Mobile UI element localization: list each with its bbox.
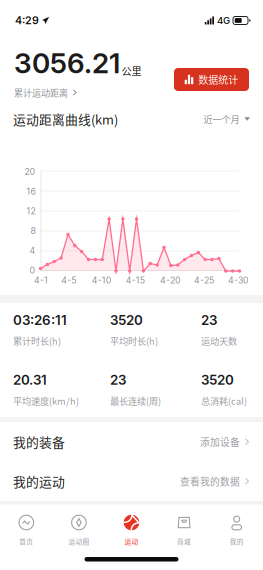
button[interactable]: 我的 <box>210 504 263 548</box>
staticText: 4G <box>217 15 230 26</box>
button[interactable]: 运动圈 <box>53 504 105 548</box>
staticText: 4 <box>29 245 35 256</box>
staticText: 近一个月 <box>203 112 239 126</box>
staticText: 4-15 <box>126 275 145 286</box>
staticText: 总消耗(cal) <box>201 394 247 407</box>
staticText: 0 <box>29 265 35 275</box>
staticText: 12 <box>26 206 35 216</box>
staticText: 20 <box>24 166 35 177</box>
staticText: 4:29 <box>15 14 39 27</box>
button[interactable]: 我的运动 <box>0 461 263 501</box>
staticText: 4-1 <box>34 275 48 286</box>
staticText: 4-10 <box>92 275 112 286</box>
button[interactable]: 首页 <box>0 504 53 548</box>
staticText: 我的 <box>230 536 244 546</box>
staticText: 商城 <box>177 536 191 546</box>
button[interactable]: 累计运动距离 <box>14 80 77 99</box>
staticText: 数据统计 <box>198 72 238 87</box>
staticText: 23 <box>201 312 217 328</box>
staticText: 8 <box>30 225 35 236</box>
staticText: 平均时长(h) <box>110 334 158 347</box>
staticText: 4-30 <box>228 275 249 286</box>
staticText: 累计运动距离 <box>14 86 68 99</box>
staticText: 查看我的数据 <box>180 474 240 488</box>
button[interactable]: 我的装备 <box>0 422 263 461</box>
staticText: 我的运动 <box>13 472 65 490</box>
staticText: 平均速度(km/h) <box>13 394 79 407</box>
staticText: 23 <box>110 372 126 388</box>
staticText: 运动圈 <box>68 536 89 546</box>
staticText: 添加设备 <box>200 435 240 449</box>
staticText: 3520 <box>110 312 143 328</box>
staticText: 最长连续(周) <box>110 394 161 407</box>
button[interactable]: 近一个月 <box>203 112 250 126</box>
staticText: 16 <box>26 186 35 197</box>
staticText: 首页 <box>19 536 33 546</box>
staticText: 3520 <box>201 372 234 388</box>
button[interactable]: 商城 <box>158 504 210 548</box>
button[interactable]: 运动 <box>105 504 158 548</box>
staticText: 运动 <box>124 536 138 546</box>
staticText: 4-20 <box>160 275 181 286</box>
staticText: 4-5 <box>61 275 76 286</box>
staticText: 公里 <box>121 63 141 78</box>
staticText: 我的装备 <box>13 432 65 451</box>
staticText: 运动距离曲线(km) <box>13 110 118 128</box>
staticText: 20.31 <box>13 372 47 388</box>
button[interactable]: 数据统计 <box>174 68 249 91</box>
staticText: 4-25 <box>194 275 214 286</box>
staticText: 03:26:11 <box>13 312 67 328</box>
staticText: 3056.21 <box>14 46 120 80</box>
staticText: 累计时长(h) <box>13 334 61 347</box>
staticText: 运动天数 <box>201 334 237 347</box>
